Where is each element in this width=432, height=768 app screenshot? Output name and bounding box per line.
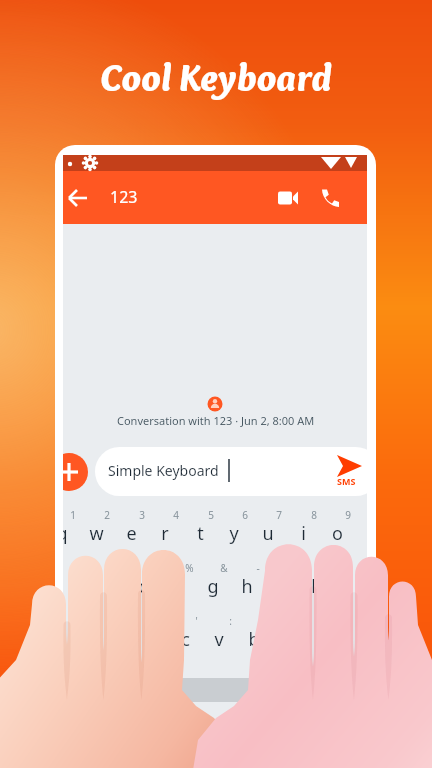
staticText: i [301, 521, 306, 546]
staticText: c [181, 627, 190, 652]
staticText: ' [195, 614, 198, 628]
staticText: 2 [104, 508, 110, 522]
staticText: 7 [276, 508, 282, 522]
staticText: - [256, 561, 260, 575]
staticText: u [262, 521, 274, 546]
staticText: h [241, 574, 253, 599]
staticText: w [89, 521, 104, 546]
staticText: 8 [311, 508, 317, 522]
staticText: y [229, 521, 239, 546]
staticText: Conversation with 123 · Jun 2, 8:00 AM [117, 413, 315, 428]
staticText: 123 [110, 186, 138, 208]
staticText: e [126, 521, 137, 546]
staticText: : [229, 614, 232, 628]
staticText: 3 [139, 508, 145, 522]
staticText: b [248, 627, 260, 652]
staticText: g [207, 574, 219, 599]
staticText: s [105, 574, 114, 599]
staticText: 4 [173, 508, 179, 522]
staticText: 5 [208, 508, 214, 522]
staticText: 1 [70, 508, 76, 522]
staticText: l [348, 574, 353, 599]
staticText: q [63, 521, 68, 546]
staticText: o [332, 521, 343, 546]
staticText: t [197, 521, 204, 546]
staticText: & [220, 561, 228, 575]
staticText: d [138, 574, 150, 599]
staticText: k [311, 574, 321, 599]
staticText: 6 [242, 508, 248, 522]
staticText: SMS [337, 475, 356, 487]
staticText: % [185, 561, 194, 575]
staticText: Simple Keyboard [108, 461, 219, 480]
staticText: 9 [345, 508, 351, 522]
staticText: r [161, 521, 169, 546]
staticText: v [214, 627, 224, 652]
staticText: Cool Keyboard [100, 54, 332, 100]
